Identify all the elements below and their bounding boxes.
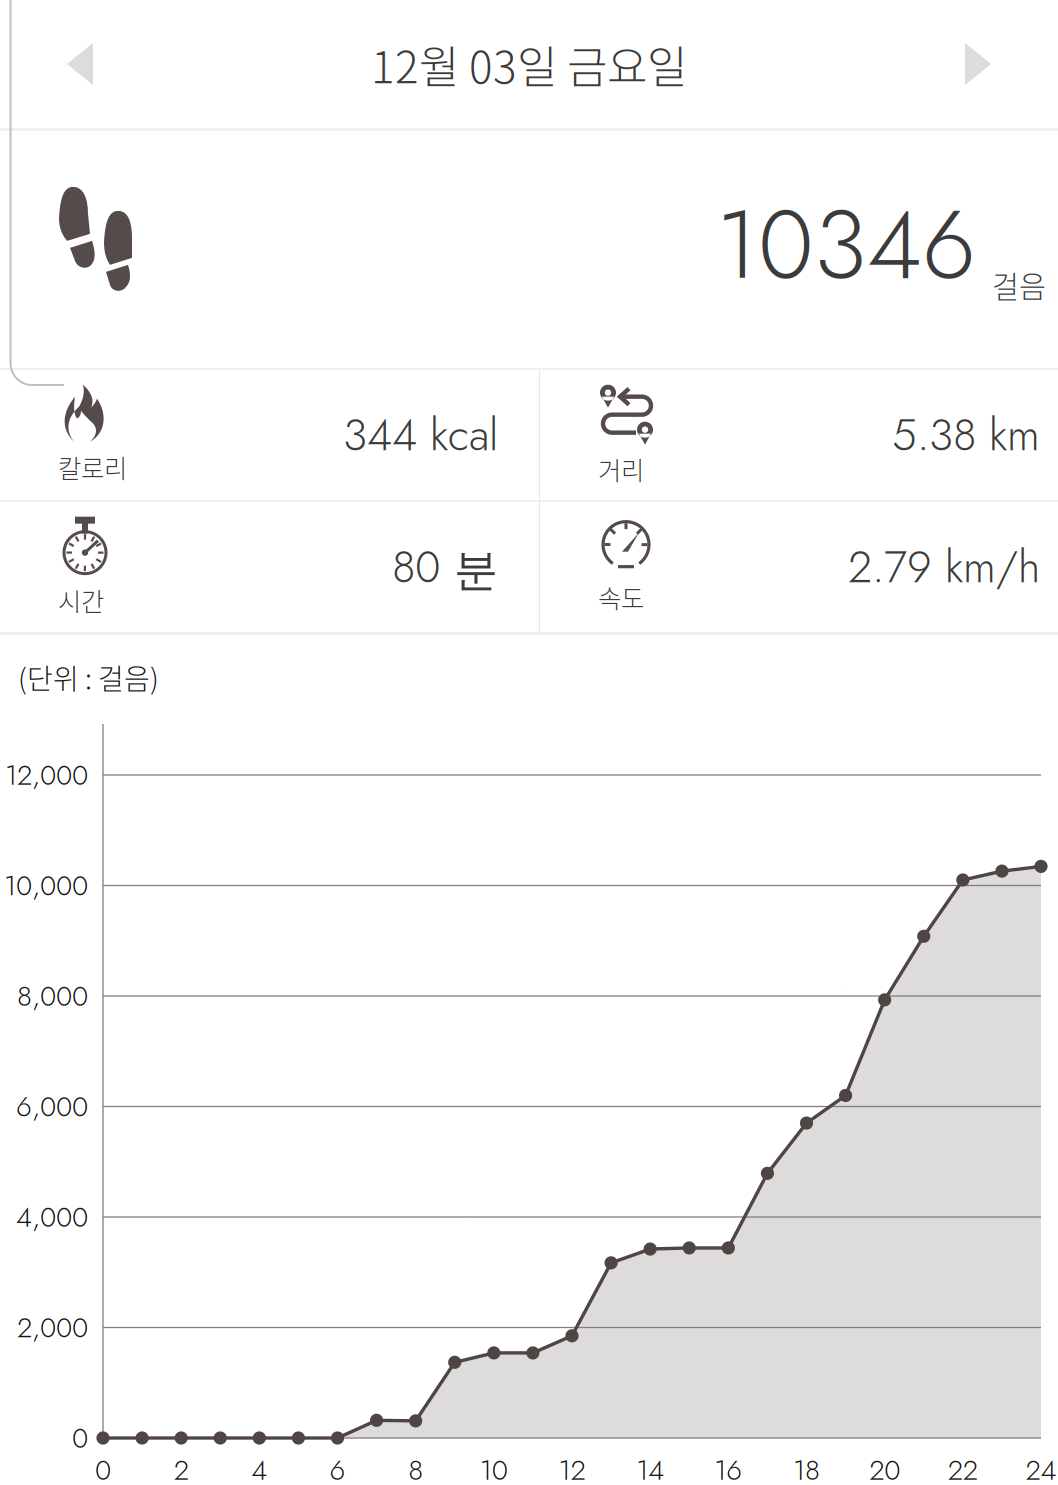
staticText: 12: [558, 1450, 585, 1485]
staticText: 속도: [598, 579, 644, 615]
staticText: 2.79 km/h: [848, 535, 1040, 599]
staticText: 6,000: [16, 1086, 88, 1127]
staticText: 칼로리: [58, 449, 127, 485]
staticText: 10346: [716, 175, 976, 314]
staticText: 14: [636, 1450, 664, 1485]
staticText: 10: [480, 1450, 508, 1485]
button[interactable]: 속도: [540, 502, 1058, 632]
staticText: 4,000: [16, 1197, 88, 1237]
staticText: 5.38 km: [892, 403, 1040, 467]
staticText: 6: [329, 1450, 345, 1485]
staticText: 24: [1025, 1450, 1056, 1485]
staticText: 4: [251, 1450, 267, 1485]
staticText: 2,000: [17, 1307, 88, 1348]
staticText: 12,000: [5, 755, 88, 795]
staticText: 16: [714, 1450, 742, 1485]
staticText: 8,000: [17, 976, 88, 1016]
staticText: 0: [95, 1450, 111, 1485]
staticText: 10,000: [4, 865, 88, 906]
staticText: 거리: [598, 451, 644, 487]
staticText: 시간: [58, 582, 104, 618]
staticText: 12월 03일 금요일: [371, 32, 687, 96]
staticText: 18: [793, 1450, 820, 1485]
staticText: 344 kcal: [343, 403, 498, 467]
button[interactable]: 칼로리: [0, 370, 539, 500]
button[interactable]: Next day: [898, 0, 1058, 128]
staticText: 2: [174, 1450, 189, 1485]
staticText: 0: [72, 1418, 88, 1458]
button[interactable]: Previous day: [0, 0, 160, 128]
staticText: (단위 : 걸음): [18, 657, 159, 697]
button[interactable]: 거리: [540, 370, 1058, 500]
staticText: 22: [948, 1450, 978, 1485]
staticText: 80 분: [392, 535, 498, 599]
staticText: 20: [869, 1450, 900, 1485]
staticText: 8: [408, 1450, 423, 1485]
button[interactable]: 시간: [0, 502, 539, 632]
staticText: 걸음: [992, 263, 1046, 306]
